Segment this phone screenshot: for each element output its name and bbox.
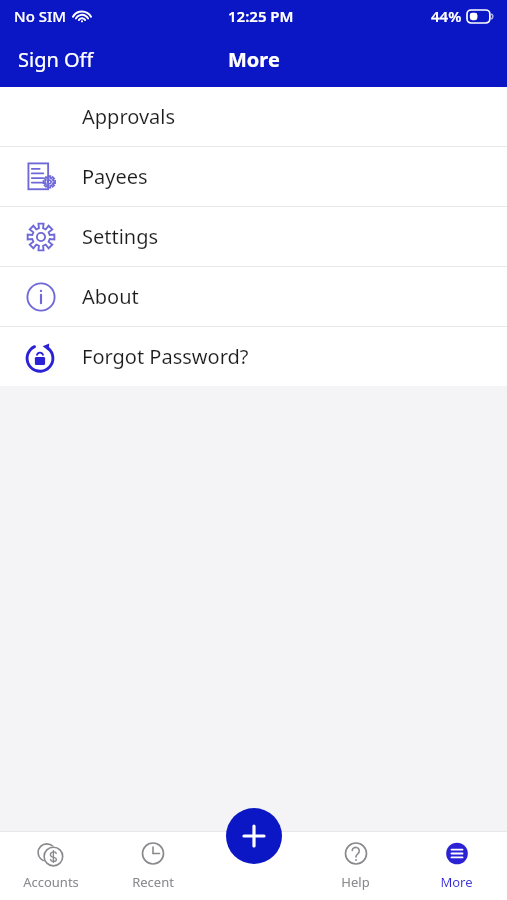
button[interactable]: More xyxy=(406,831,507,900)
button[interactable]: Accounts xyxy=(0,831,102,900)
button[interactable]: Approvals xyxy=(0,87,507,146)
staticText: About xyxy=(82,283,139,310)
staticText: Payees xyxy=(82,163,148,190)
button[interactable]: Sign Off xyxy=(8,40,104,79)
staticText: Forgot Password? xyxy=(82,343,249,370)
button[interactable]: Payees xyxy=(0,147,507,206)
staticText: Help xyxy=(341,873,370,891)
staticText: Accounts xyxy=(23,873,79,891)
staticText: More xyxy=(440,873,473,891)
staticText: Approvals xyxy=(82,103,176,130)
staticText: Sign Off xyxy=(18,46,94,73)
button[interactable]: About xyxy=(0,267,507,326)
staticText: More xyxy=(228,46,280,73)
staticText: No SIM xyxy=(14,6,67,26)
staticText: 44% xyxy=(431,6,462,26)
button[interactable]: Help xyxy=(305,831,406,900)
staticText: Settings xyxy=(82,223,159,250)
button[interactable]: Settings xyxy=(0,207,507,266)
staticText: 12:25 PM xyxy=(228,6,294,26)
button[interactable]: Recent xyxy=(102,831,204,900)
button[interactable]: Forgot Password? xyxy=(0,327,507,386)
button[interactable]: Add xyxy=(226,808,282,864)
staticText: Recent xyxy=(132,873,174,891)
